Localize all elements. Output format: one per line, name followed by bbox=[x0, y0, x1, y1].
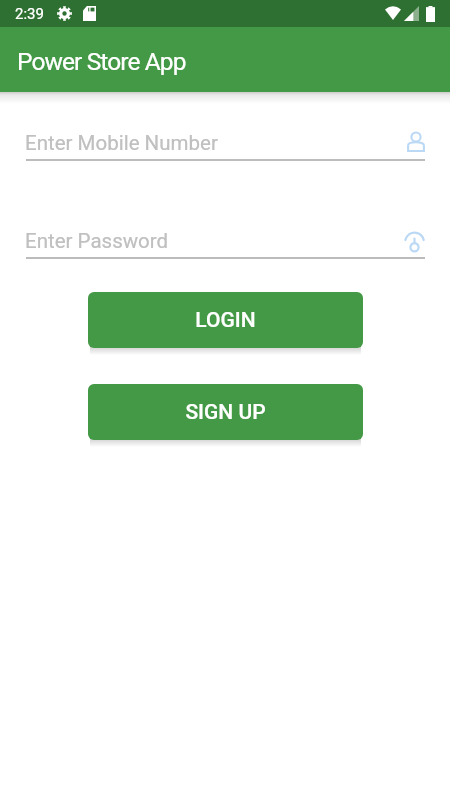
staticText: Enter Mobile Number bbox=[25, 131, 218, 155]
staticText: Power Store App bbox=[17, 47, 186, 76]
button[interactable]: SIGN UP bbox=[88, 384, 363, 440]
staticText: Enter Password bbox=[25, 229, 169, 253]
other: Account bbox=[407, 132, 425, 151]
staticText: 2:39 bbox=[15, 5, 44, 23]
button[interactable]: LOGIN bbox=[88, 292, 363, 348]
button[interactable]: Account bbox=[404, 132, 422, 151]
button[interactable] bbox=[26, 123, 425, 161]
button[interactable] bbox=[26, 221, 425, 259]
button[interactable]: Password bbox=[404, 230, 425, 250]
staticText: LOGIN bbox=[195, 308, 256, 333]
other: Password bbox=[404, 232, 425, 252]
staticText: SIGN UP bbox=[185, 400, 266, 425]
